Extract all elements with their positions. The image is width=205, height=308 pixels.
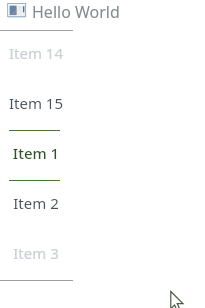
staticText: Item 1 [1,143,71,163]
staticText: Item 3 [1,243,71,263]
button[interactable]: Item 3 [0,230,205,280]
staticText: Item 15 [1,93,71,113]
other: App icon [6,2,28,20]
staticText: Item 14 [1,43,71,63]
button[interactable]: App icon [0,0,205,30]
button[interactable]: Item 2 [0,180,205,230]
button[interactable]: Item 1 [0,130,205,180]
other: Pointer [170,291,186,308]
button[interactable]: Item 15 [0,80,205,130]
button[interactable]: Item 14 [0,30,205,80]
staticText: Hello World [32,1,120,23]
staticText: Item 2 [1,193,71,213]
